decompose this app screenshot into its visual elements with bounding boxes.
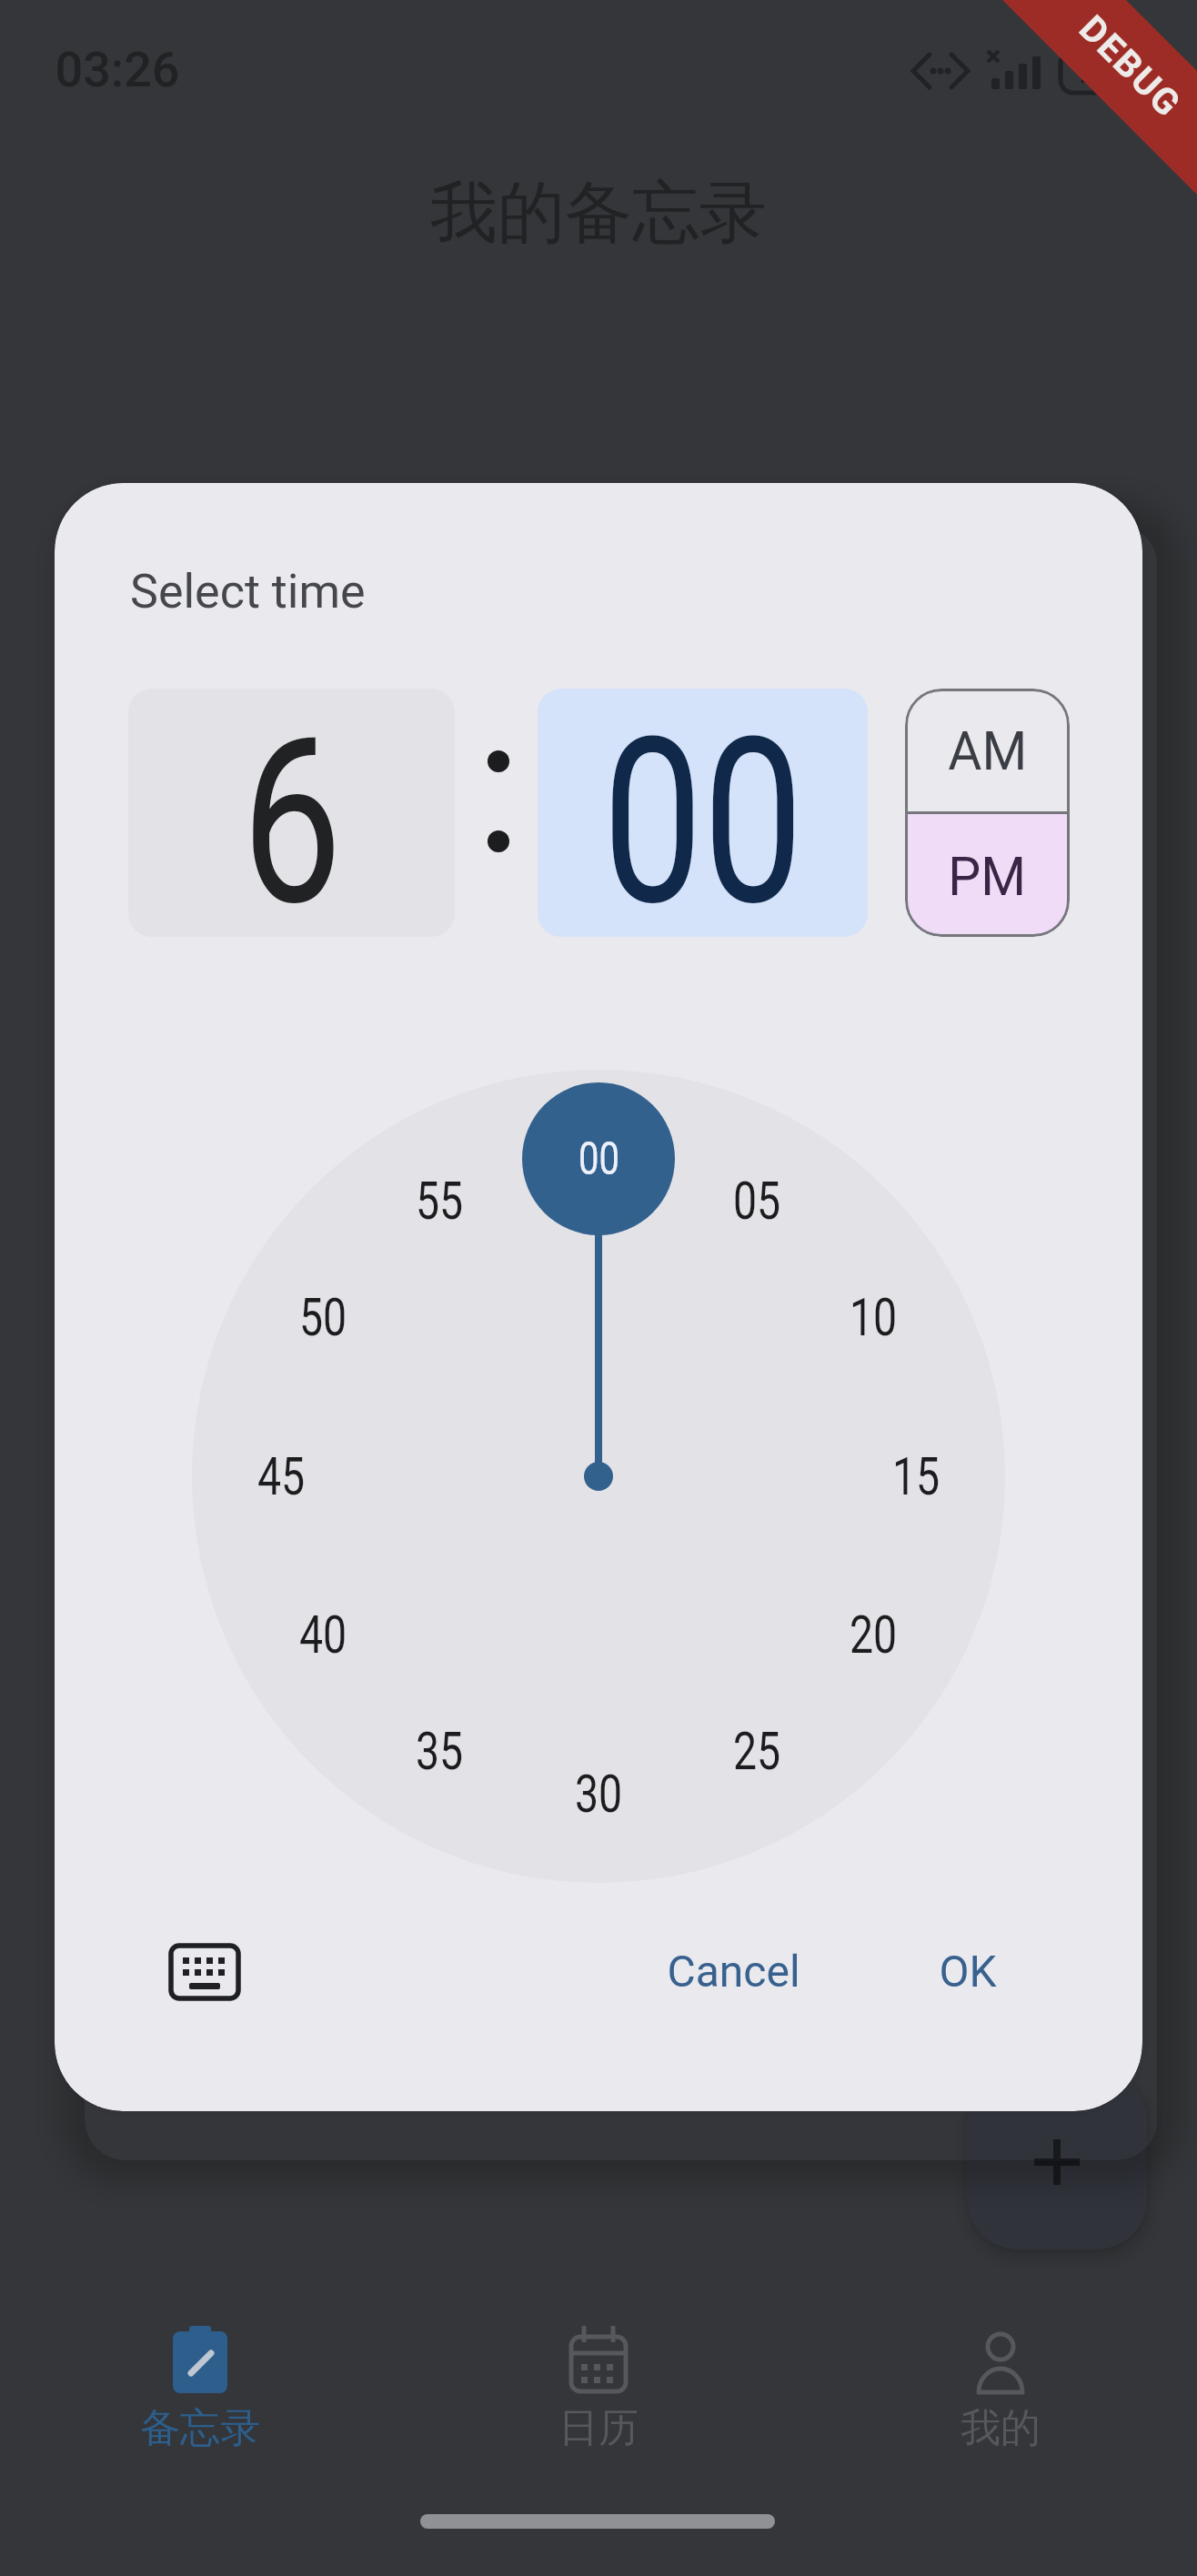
staticText: 我的	[961, 2403, 1041, 2452]
staticText: Cancel	[667, 1946, 800, 1997]
staticText: 45	[257, 1445, 305, 1507]
staticText: AM	[948, 719, 1028, 782]
staticText: OK	[939, 1946, 997, 1997]
staticText: 日历	[558, 2403, 639, 2452]
staticText: 30	[574, 1763, 623, 1825]
staticText: 备忘录	[140, 2403, 260, 2452]
staticText: 20	[849, 1604, 897, 1665]
staticText: DEBUG	[1071, 7, 1190, 126]
staticText: 55	[415, 1170, 463, 1232]
staticText: 25	[733, 1720, 781, 1782]
staticText: 15	[892, 1445, 940, 1507]
staticText: 00	[578, 1132, 620, 1186]
staticText: 00	[602, 689, 804, 937]
staticText: PM	[948, 844, 1027, 908]
staticText: 100	[1074, 54, 1122, 90]
staticText: 40	[299, 1604, 347, 1665]
staticText: Select time	[130, 564, 366, 619]
staticText: 10	[849, 1286, 897, 1348]
staticText: 35	[415, 1720, 463, 1782]
staticText: 05	[733, 1170, 781, 1232]
staticText: 03:26	[55, 41, 180, 98]
staticText: 我的备忘录	[430, 171, 767, 247]
staticText: 50	[299, 1286, 347, 1348]
staticText: 6	[242, 689, 342, 937]
